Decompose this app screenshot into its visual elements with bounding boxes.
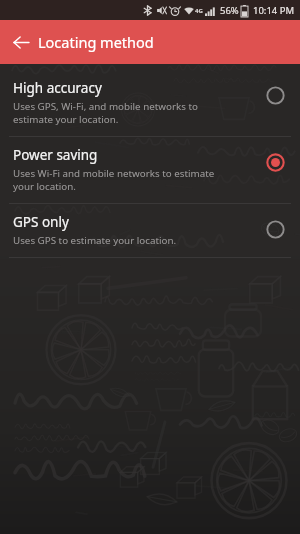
staticText: Uses Wi-Fi and mobile networks to estima…	[13, 167, 215, 193]
button[interactable]: GPS only	[262, 216, 288, 242]
button[interactable]: High accuracy	[0, 70, 300, 136]
staticText: High accuracy	[13, 79, 102, 97]
button[interactable]: Power saving	[0, 137, 300, 203]
staticText: Uses GPS to estimate your location.	[13, 234, 177, 247]
staticText: Power saving	[13, 146, 98, 164]
button[interactable]: High accuracy	[262, 82, 288, 108]
staticText: 10:14 PM	[253, 4, 295, 17]
staticText: 4G	[195, 7, 203, 15]
staticText: Locating method	[38, 32, 154, 52]
staticText: GPS only	[13, 213, 69, 231]
button[interactable]: Power saving selected	[262, 149, 288, 175]
button[interactable]: GPS only	[0, 204, 300, 257]
staticText: 56%	[220, 4, 239, 17]
button[interactable]: Navigate up	[4, 25, 38, 59]
staticText: Uses GPS, Wi-Fi, and mobile networks to …	[13, 100, 198, 126]
